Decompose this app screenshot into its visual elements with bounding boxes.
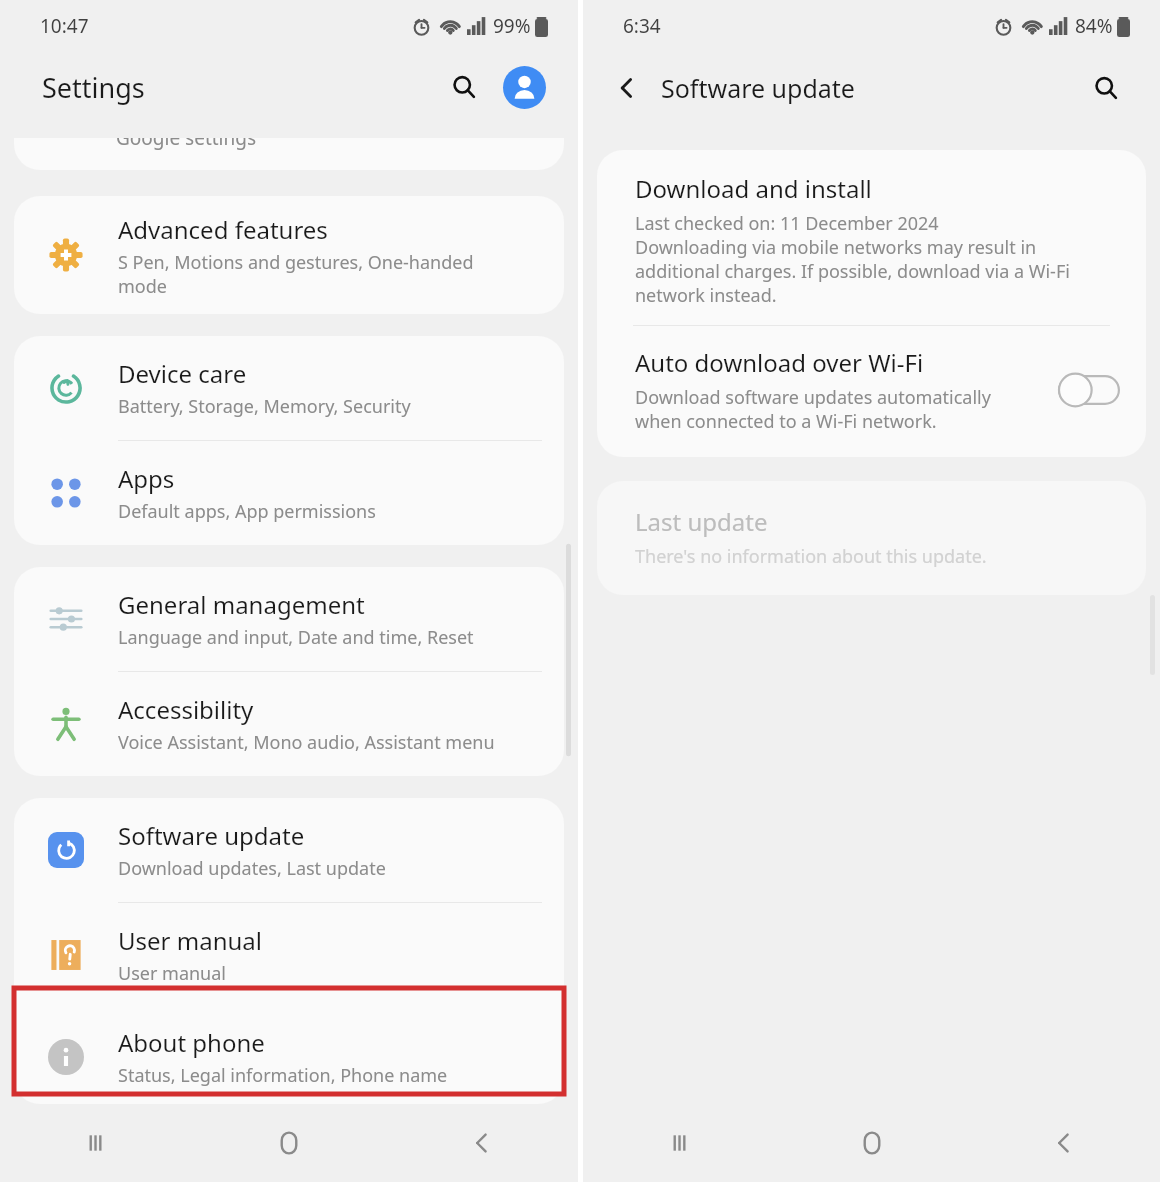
staticText: Default apps, App permissions — [118, 499, 376, 524]
button[interactable]: Search — [1082, 64, 1130, 112]
staticText: General management — [118, 588, 365, 621]
staticText: Download updates, Last update — [118, 856, 386, 881]
button[interactable]: Home — [192, 1104, 385, 1182]
button[interactable]: Apps — [14, 441, 564, 545]
button[interactable]: Search — [440, 63, 488, 111]
staticText: 99% — [493, 13, 531, 39]
staticText: Software update — [118, 819, 305, 852]
button[interactable]: General management — [14, 567, 564, 671]
staticText: Advanced features — [118, 213, 328, 246]
button[interactable]: Accessibility — [14, 672, 564, 776]
staticText: Last checked on: 11 December 2024 Downlo… — [635, 211, 1070, 307]
staticText: Language and input, Date and time, Reset — [118, 625, 474, 650]
button[interactable]: Software update — [14, 798, 564, 902]
staticText: 10:47 — [40, 13, 89, 39]
button[interactable]: Account — [500, 63, 548, 111]
button[interactable]: User manual — [14, 903, 564, 1007]
staticText: Apps — [118, 462, 175, 495]
button[interactable]: Recents — [0, 1104, 192, 1182]
button[interactable]: Download and install — [597, 150, 1146, 325]
button[interactable]: Auto download over Wi-Fi — [597, 326, 1146, 457]
staticText: User manual — [118, 924, 262, 957]
staticText: About phone — [118, 1026, 265, 1059]
button[interactable]: Back — [968, 1104, 1160, 1182]
staticText: Settings — [42, 69, 145, 106]
staticText: Download software updates automatically … — [635, 385, 991, 433]
staticText: There's no information about this update… — [635, 544, 987, 569]
staticText: 6:34 — [623, 13, 661, 39]
button[interactable]: Google settings — [14, 138, 564, 170]
staticText: Battery, Storage, Memory, Security — [118, 394, 411, 419]
button[interactable]: Recents — [583, 1104, 776, 1182]
staticText: User manual — [118, 961, 226, 986]
staticText: Software update — [661, 71, 855, 105]
button[interactable]: Advanced features — [14, 196, 564, 314]
staticText: S Pen, Motions and gestures, One-handed … — [118, 250, 474, 298]
staticText: Status, Legal information, Phone name — [118, 1063, 448, 1088]
button[interactable]: Home — [776, 1104, 968, 1182]
staticText: Google settings — [116, 138, 257, 151]
staticText: Voice Assistant, Mono audio, Assistant m… — [118, 730, 495, 755]
button[interactable]: Last update — [597, 481, 1146, 595]
button[interactable]: Back — [385, 1104, 578, 1182]
staticText: Accessibility — [118, 693, 254, 726]
staticText: Last update — [635, 505, 768, 538]
button[interactable]: Device care — [14, 336, 564, 440]
button[interactable]: Back — [605, 66, 649, 110]
staticText: Device care — [118, 357, 247, 390]
staticText: Auto download over Wi-Fi — [635, 346, 924, 379]
button[interactable]: About phone — [14, 1009, 564, 1104]
staticText: 84% — [1075, 13, 1113, 39]
staticText: Download and install — [635, 172, 872, 205]
